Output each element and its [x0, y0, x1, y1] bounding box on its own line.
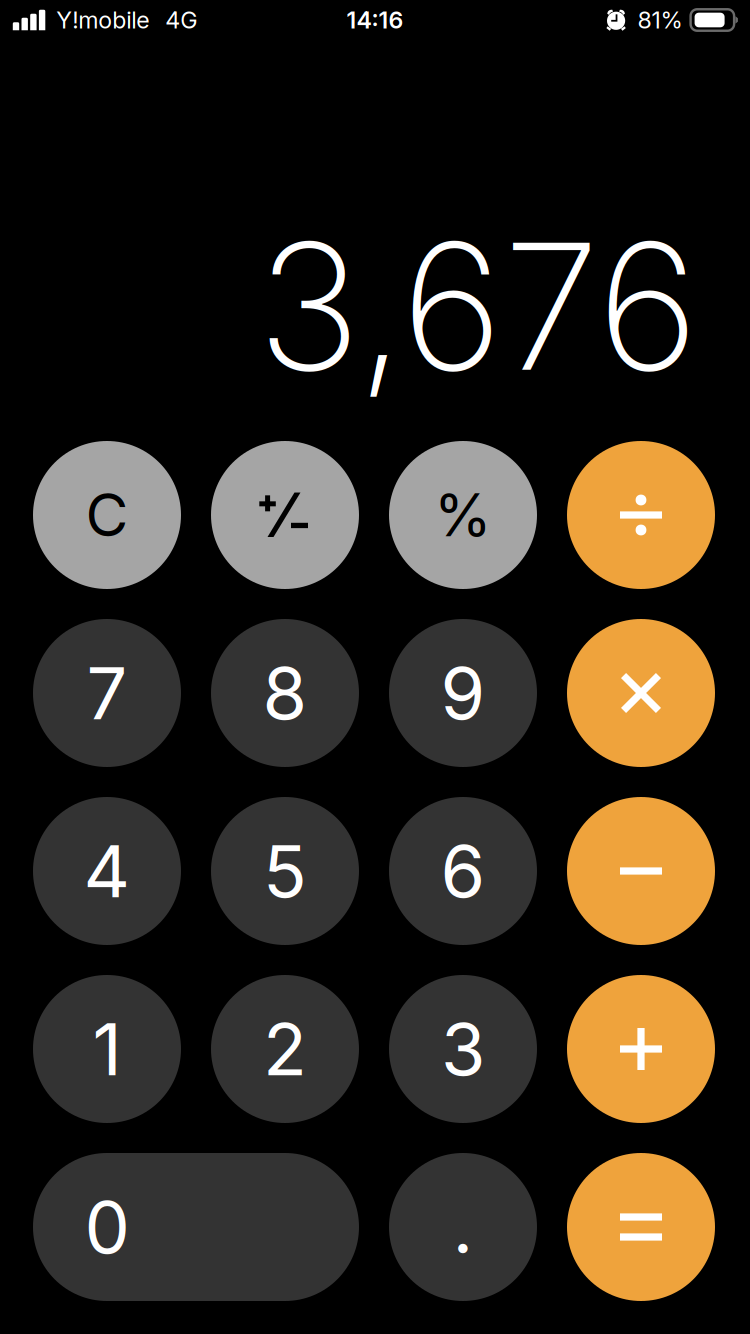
staticText: 4G	[165, 6, 197, 34]
staticText: 7	[86, 649, 127, 736]
staticText: 3	[441, 1005, 485, 1092]
staticText: 0	[84, 1183, 129, 1270]
button[interactable]: 8	[211, 619, 359, 767]
staticText: 81%	[638, 6, 683, 34]
button[interactable]: Equals	[567, 1153, 715, 1301]
staticText: Y!mobile	[56, 6, 149, 34]
button[interactable]: %	[389, 441, 537, 589]
button[interactable]: Divide	[567, 441, 715, 589]
button[interactable]: 1	[33, 975, 181, 1123]
button[interactable]: Subtract	[567, 797, 715, 945]
staticText: 5	[263, 827, 307, 914]
staticText: 1	[92, 1005, 121, 1092]
staticText: %	[434, 479, 492, 550]
staticText: 4	[83, 827, 130, 914]
staticText: 14:16	[346, 6, 403, 34]
button[interactable]: 0	[33, 1153, 359, 1301]
staticText: C	[85, 479, 128, 550]
button[interactable]: Plus minus	[211, 441, 359, 589]
button[interactable]: 6	[389, 797, 537, 945]
button[interactable]: 5	[211, 797, 359, 945]
button[interactable]: C	[33, 441, 181, 589]
staticText: 2	[263, 1005, 307, 1092]
staticText: .	[452, 1183, 473, 1270]
button[interactable]: 3	[389, 975, 537, 1123]
button[interactable]: 7	[33, 619, 181, 767]
button[interactable]: 9	[389, 619, 537, 767]
button[interactable]: .	[389, 1153, 537, 1301]
button[interactable]: Add	[567, 975, 715, 1123]
staticText: 8	[262, 649, 307, 736]
staticText: 6	[440, 827, 485, 914]
button[interactable]: Multiply	[567, 619, 715, 767]
staticText: 9	[440, 649, 485, 736]
button[interactable]: 2	[211, 975, 359, 1123]
staticText: 3,676	[257, 201, 699, 412]
button[interactable]: 4	[33, 797, 181, 945]
